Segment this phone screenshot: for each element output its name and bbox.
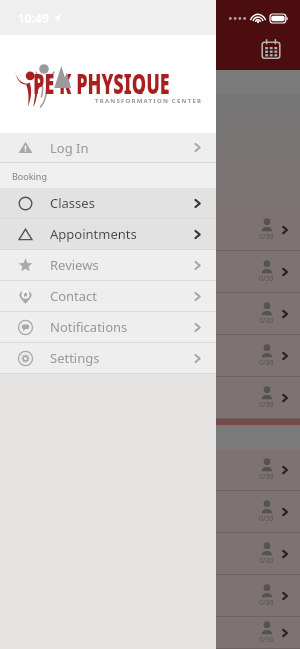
staticText: Contact: [50, 287, 98, 305]
button[interactable]: Contact: [0, 281, 216, 311]
button[interactable]: Classes: [0, 188, 216, 218]
button[interactable]: 0/30: [0, 209, 300, 251]
button[interactable]: 0/30: [0, 293, 300, 335]
button[interactable]: 0/30: [0, 575, 300, 617]
button[interactable]: 0/30: [0, 491, 300, 533]
staticText: 0/30: [259, 358, 274, 368]
staticText: 10:49: [18, 10, 49, 26]
button[interactable]: 0/30: [0, 617, 300, 649]
staticText: Reviews: [50, 256, 99, 274]
staticText: Log In: [50, 139, 89, 157]
staticText: Notifications: [50, 318, 128, 336]
staticText: Settings: [50, 349, 100, 367]
staticText: 0/30: [259, 556, 274, 566]
staticText: 0/30: [259, 232, 274, 242]
button[interactable]: Log In: [0, 133, 216, 162]
staticText: Booking: [12, 170, 47, 182]
staticText: TRANSFORMATION CENTER: [95, 97, 203, 105]
button[interactable]: 0/30: [0, 335, 300, 377]
staticText: 0/30: [259, 316, 274, 326]
staticText: 0/30: [259, 472, 274, 482]
staticText: 0/30: [259, 514, 274, 524]
button[interactable]: Reviews: [0, 250, 216, 280]
button[interactable]: 0/30: [0, 251, 300, 293]
button[interactable]: Appointments: [0, 219, 216, 249]
staticText: 0/30: [259, 400, 274, 410]
staticText: Appointments: [50, 225, 137, 243]
button[interactable]: Notifications: [0, 312, 216, 342]
button[interactable]: Settings: [0, 343, 216, 373]
staticText: Classes: [50, 194, 95, 212]
staticText: 0/30: [259, 274, 274, 284]
button[interactable]: 0/30: [0, 377, 300, 419]
button[interactable]: Calendar: [256, 34, 286, 64]
staticText: 0/30: [259, 635, 274, 645]
button[interactable]: 0/30: [0, 449, 300, 491]
staticText: 0/30: [259, 598, 274, 608]
button[interactable]: 0/30: [0, 533, 300, 575]
staticText: PE K PHYSIQUE: [33, 64, 170, 94]
